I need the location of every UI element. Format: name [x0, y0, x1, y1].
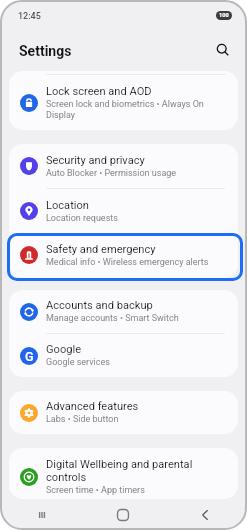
button[interactable]: Home [82, 502, 164, 528]
staticText: Google [46, 343, 82, 356]
staticText: Medical info • Wireless emergency alerts [46, 257, 209, 268]
staticText: Location requests [46, 213, 118, 224]
button[interactable]: Advanced features [9, 391, 238, 434]
button[interactable]: Security and privacy [9, 144, 238, 188]
staticText: Security and privacy [46, 154, 145, 167]
staticText: Auto Blocker • Permission usage [46, 168, 177, 179]
staticText: Safety and emergency [46, 243, 156, 256]
staticText: Accounts and backup [46, 299, 153, 312]
button[interactable]: G [9, 334, 238, 377]
button[interactable]: Search [212, 39, 234, 61]
button[interactable]: Safety and emergency [9, 233, 238, 277]
staticText: 12:45 [18, 11, 41, 22]
staticText: Advanced features [46, 400, 139, 413]
staticText: Location [46, 199, 89, 212]
staticText: Google services [46, 357, 110, 368]
staticText: Settings [19, 43, 72, 59]
staticText: Screen time • App timers [46, 485, 145, 496]
staticText: Screen lock and biometrics • Always On D… [46, 99, 227, 121]
staticText: Digital Wellbeing and parental controls [46, 458, 227, 484]
button[interactable]: Accounts and backup [9, 290, 238, 333]
button[interactable]: Location [9, 189, 238, 233]
staticText: Manage accounts • Smart Switch [46, 313, 179, 324]
staticText: 100 [219, 12, 229, 19]
button[interactable]: Back [164, 502, 246, 528]
staticText: Labs • Side button [46, 414, 119, 425]
staticText: G [25, 349, 34, 364]
button[interactable]: Recent apps [1, 502, 82, 528]
button[interactable]: Lock screen and AOD [9, 75, 238, 130]
button[interactable]: Digital Wellbeing and parental controls [9, 448, 238, 499]
staticText: Lock screen and AOD [46, 85, 152, 98]
